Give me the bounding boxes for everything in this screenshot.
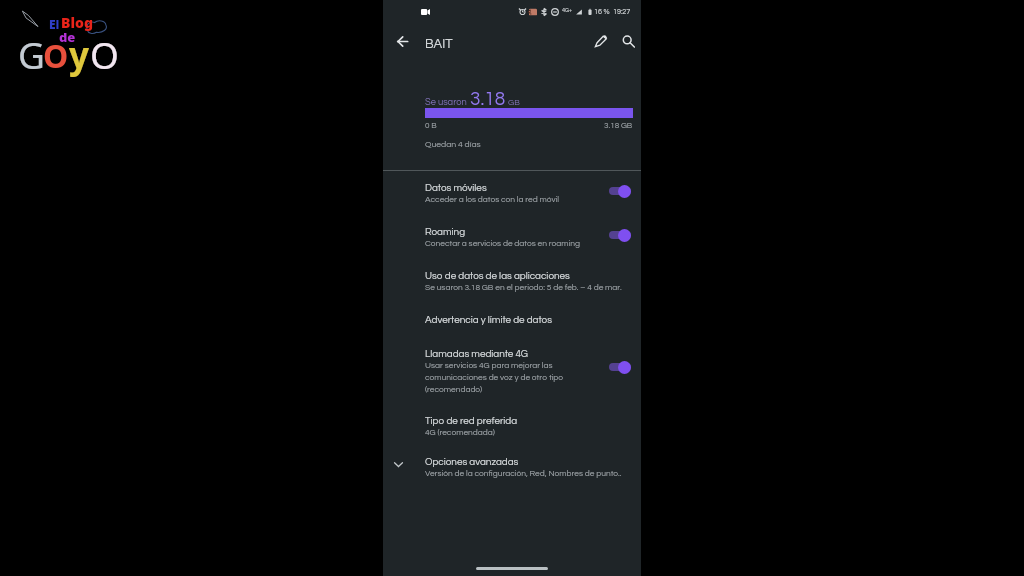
button[interactable]: Edit: [586, 26, 616, 56]
button[interactable]: Search: [613, 26, 643, 56]
staticText: 0 B: [425, 121, 437, 129]
button[interactable]: Toggle Roaming: [605, 224, 637, 246]
staticText: Datos móviles: [425, 183, 487, 193]
staticText: Se usaron: [425, 97, 467, 107]
staticText: 19:27: [613, 8, 631, 15]
staticText: 16 %: [594, 8, 610, 15]
staticText: O: [90, 29, 119, 79]
button[interactable]: Toggle Llamadas mediante 4G: [605, 356, 637, 378]
staticText: Llamadas mediante 4G: [425, 349, 529, 359]
staticText: G: [18, 29, 45, 79]
staticText: O: [43, 34, 69, 78]
staticText: Acceder a los datos con la red móvil: [425, 195, 560, 204]
button[interactable]: Back: [388, 26, 416, 54]
staticText: El: [49, 16, 60, 32]
staticText: Advertencia y límite de datos: [425, 315, 552, 325]
staticText: Versión de la configuración, Red, Nombre…: [425, 469, 622, 478]
button[interactable]: Uso de datos de las aplicaciones: [383, 269, 641, 294]
staticText: 3.18: [470, 89, 506, 109]
staticText: Quedan 4 días: [425, 140, 481, 149]
button[interactable]: Opciones avanzadas: [383, 455, 641, 480]
staticText: 4G+: [562, 7, 573, 13]
staticText: Se usaron 3.18 GB en el periodo: 5 de fe…: [425, 283, 622, 292]
staticText: GB: [508, 98, 520, 107]
button[interactable]: Datos móviles: [383, 181, 641, 206]
staticText: Opciones avanzadas: [425, 457, 519, 467]
staticText: 4G (recomendada): [425, 428, 495, 437]
staticText: Roaming: [425, 227, 466, 237]
staticText: Conectar a servicios de datos en roaming: [425, 239, 581, 248]
staticText: Usar servicios 4G para mejorar las comun…: [425, 361, 564, 394]
button[interactable]: Roaming: [383, 225, 641, 250]
button[interactable]: Toggle Datos móviles: [605, 180, 637, 202]
staticText: BAIT: [425, 37, 453, 50]
button[interactable]: Advertencia y límite de datos: [383, 313, 641, 327]
staticText: Tipo de red preferida: [425, 416, 518, 426]
staticText: Blog: [61, 13, 93, 32]
staticText: Uso de datos de las aplicaciones: [425, 271, 570, 281]
staticText: y: [69, 31, 89, 79]
staticText: de: [59, 28, 76, 46]
button[interactable]: Tipo de red preferida: [383, 414, 641, 439]
staticText: 3.18 GB: [604, 121, 633, 129]
button[interactable]: Llamadas mediante 4G: [383, 347, 641, 396]
